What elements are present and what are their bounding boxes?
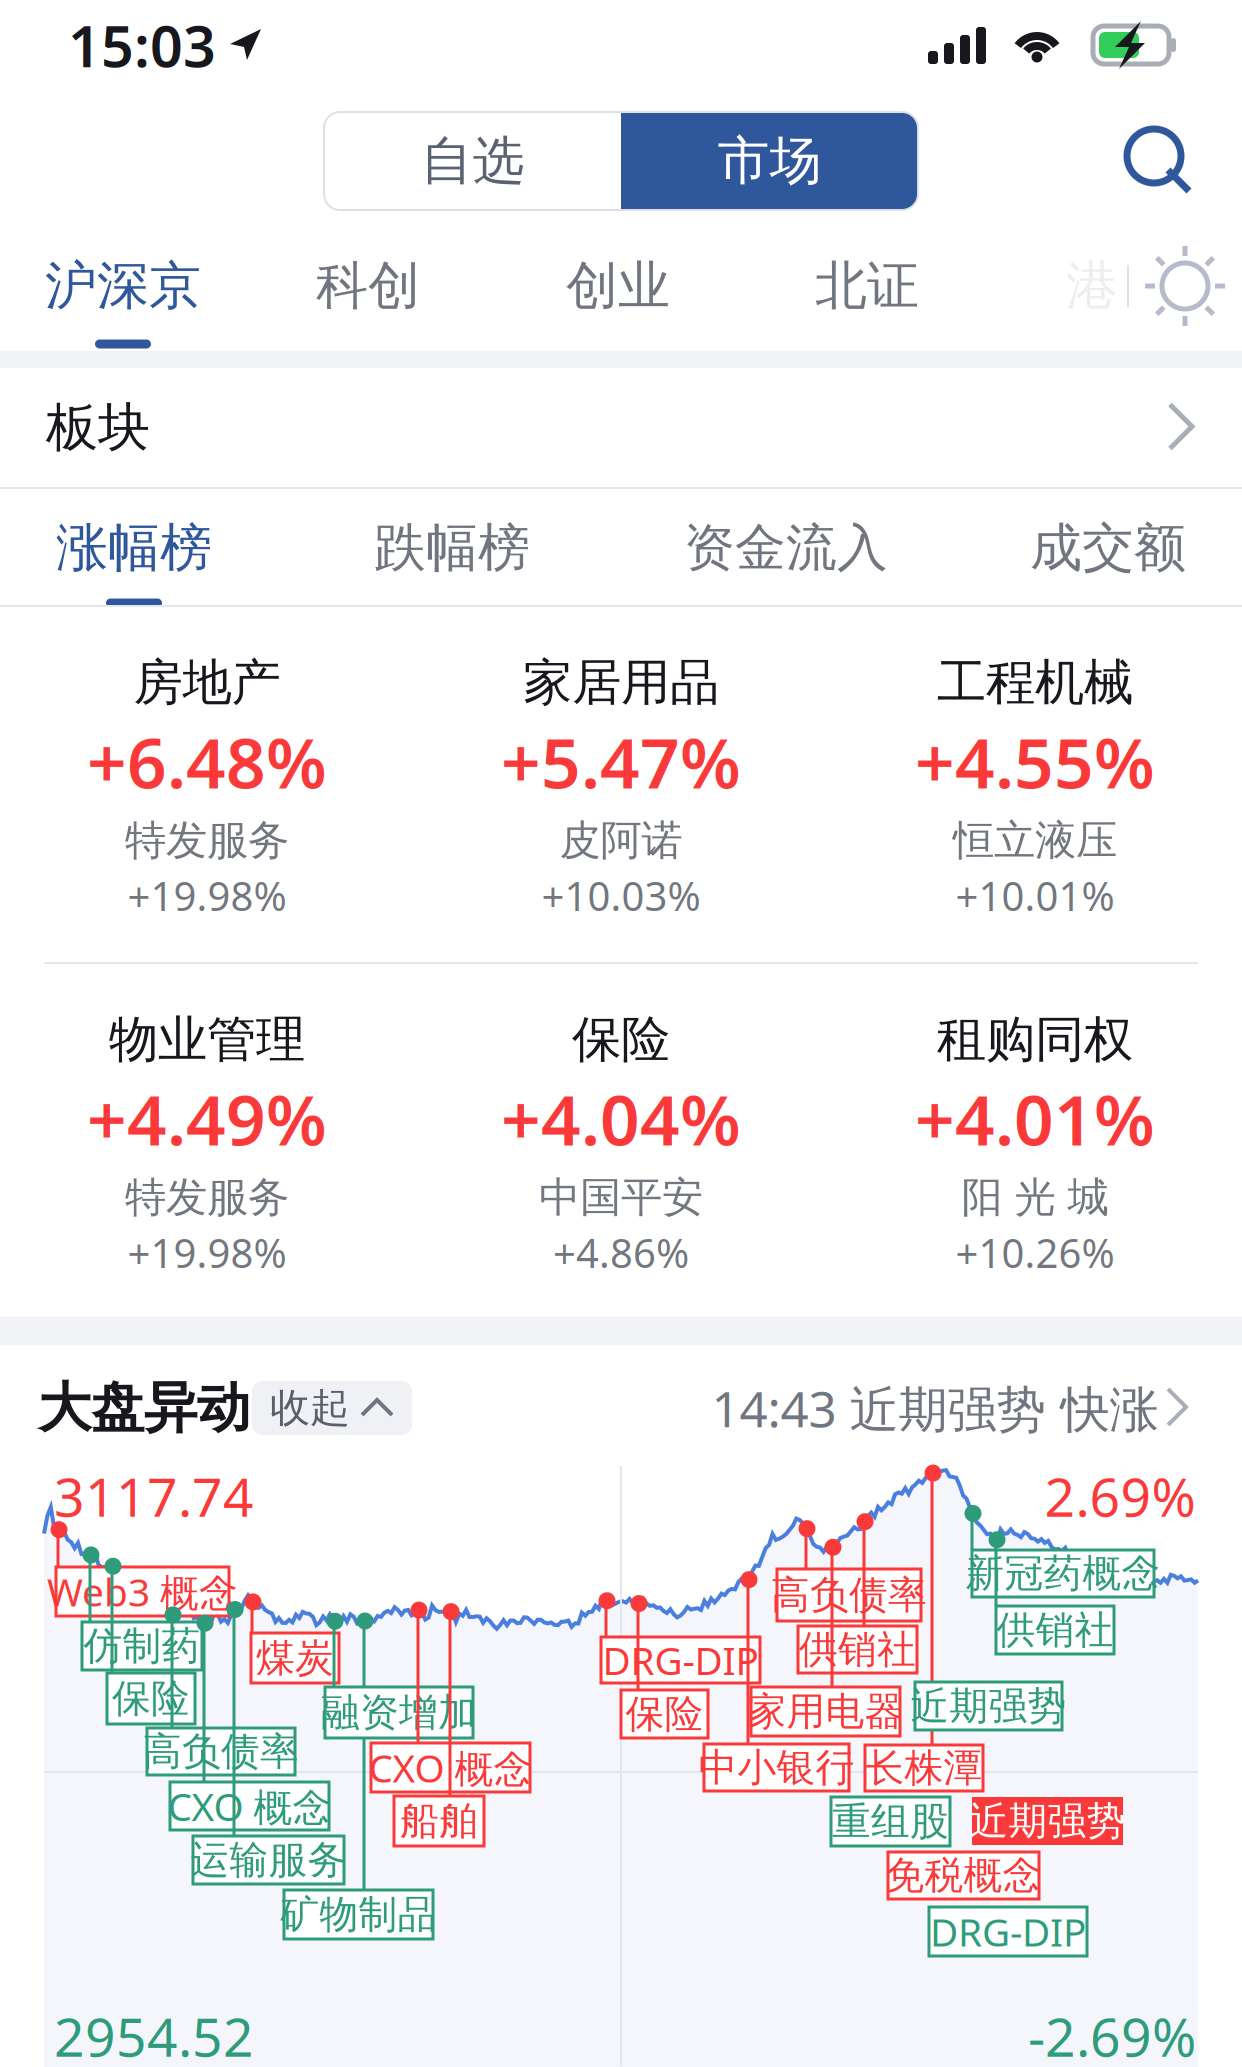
staticText: +4.49% [87, 1072, 327, 1165]
staticText: 15:03 [68, 7, 216, 83]
staticText: 近期强势 [910, 1682, 1066, 1730]
button[interactable]: 跌幅榜 [342, 500, 562, 596]
button[interactable]: 家居用品 [414, 606, 828, 961]
button[interactable]: Brightness [1130, 237, 1240, 335]
staticText: 供销社 [799, 1626, 916, 1673]
staticText: 涨幅榜 [56, 516, 212, 580]
staticText: -2.69% [1028, 2001, 1196, 2067]
staticText: CXO 概念 [368, 1742, 532, 1793]
staticText: 阳 光 城 [961, 1172, 1108, 1223]
button[interactable]: More [1148, 1368, 1208, 1448]
staticText: 矿物制品 [280, 1891, 436, 1938]
staticText: 港 [1066, 254, 1118, 318]
staticText: 新冠药概念 [965, 1550, 1160, 1597]
staticText: 收起 [270, 1383, 350, 1432]
staticText: 运输服务 [190, 1836, 346, 1884]
staticText: +4.04% [501, 1072, 741, 1165]
button[interactable]: 涨幅榜 [24, 500, 244, 596]
staticText: 家用电器 [747, 1688, 903, 1735]
button[interactable]: 租购同权 [828, 963, 1242, 1318]
staticText: 物业管理 [109, 1009, 305, 1070]
staticText: 高负债率 [143, 1728, 299, 1775]
button[interactable]: 成交额 [998, 500, 1218, 596]
staticText: 租购同权 [937, 1009, 1133, 1070]
staticText: Web3 概念 [47, 1566, 238, 1617]
staticText: 房地产 [133, 652, 280, 713]
staticText: 高负债率 [771, 1571, 927, 1619]
staticText: 板块 [46, 396, 150, 459]
staticText: 特发服务 [125, 815, 289, 866]
staticText: 14:43 近期强势 快涨 [711, 1375, 1158, 1441]
staticText: +10.03% [541, 869, 700, 922]
button[interactable]: 收起 [252, 1381, 412, 1435]
staticText: 成交额 [1030, 516, 1186, 580]
button[interactable]: 工程机械 [828, 606, 1242, 961]
staticText: 大盘异动 [38, 1375, 250, 1441]
staticText: 中小银行 [698, 1744, 854, 1791]
staticText: 跌幅榜 [374, 516, 530, 580]
button[interactable]: 房地产 [0, 606, 414, 961]
staticText: 北证 [815, 254, 919, 318]
staticText: +19.98% [127, 869, 286, 922]
staticText: 供销社 [996, 1606, 1113, 1654]
staticText: 科创 [316, 254, 420, 318]
staticText: 特发服务 [125, 1172, 289, 1223]
staticText: 中国平安 [539, 1172, 703, 1223]
staticText: 皮阿诺 [559, 815, 682, 866]
staticText: 长株潭 [865, 1744, 982, 1792]
staticText: +4.55% [915, 715, 1155, 808]
staticText: DRG-DIP [930, 1906, 1086, 1957]
button[interactable]: Search [1104, 106, 1214, 216]
button[interactable]: 科创 [278, 237, 458, 335]
button[interactable]: 沪深京 [23, 237, 223, 335]
staticText: 恒立液压 [953, 815, 1117, 866]
staticText: CXO 概念 [167, 1780, 331, 1832]
staticText: 家居用品 [523, 652, 719, 713]
staticText: DRG-DIP [602, 1634, 758, 1686]
staticText: +4.01% [915, 1072, 1155, 1165]
staticText: 煤炭 [256, 1634, 334, 1682]
button[interactable]: 物业管理 [0, 963, 414, 1318]
button[interactable]: 自选 [324, 112, 621, 210]
staticText: 3117.74 [54, 1461, 254, 1531]
staticText: 近期强势 [969, 1797, 1125, 1845]
staticText: 资金流入 [684, 517, 888, 579]
staticText: +5.47% [501, 715, 741, 808]
staticText: 2954.52 [54, 2001, 254, 2067]
staticText: 2.69% [1044, 1461, 1195, 1531]
staticText: 融资增加 [321, 1689, 477, 1736]
button[interactable]: 保险 [414, 963, 828, 1318]
button[interactable]: 北证 [777, 237, 957, 335]
staticText: 仿制药 [83, 1622, 200, 1670]
staticText: 创业 [566, 254, 670, 318]
button[interactable]: 资金流入 [661, 500, 911, 596]
staticText: 重组股 [832, 1798, 949, 1845]
button[interactable]: 创业 [528, 237, 708, 335]
button[interactable]: 板块 [0, 368, 1242, 487]
staticText: 保险 [572, 1009, 670, 1070]
staticText: 工程机械 [937, 652, 1133, 713]
staticText: +10.01% [955, 869, 1114, 922]
staticText: +10.26% [955, 1226, 1114, 1279]
staticText: +4.86% [553, 1226, 689, 1279]
staticText: 免税概念 [885, 1852, 1041, 1899]
staticText: 保险 [625, 1690, 703, 1738]
staticText: +6.48% [87, 715, 327, 808]
staticText: 保险 [112, 1675, 190, 1722]
staticText: 沪深京 [45, 254, 201, 318]
button[interactable]: 市场 [621, 112, 918, 210]
staticText: 市场 [717, 129, 821, 193]
staticText: 自选 [420, 129, 524, 193]
staticText: 船舶 [400, 1797, 478, 1845]
staticText: +19.98% [127, 1226, 286, 1279]
